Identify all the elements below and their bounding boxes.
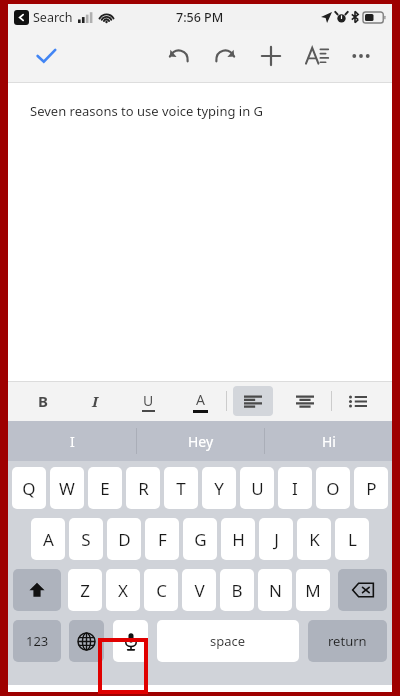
staticText: 7:56 PM	[176, 9, 224, 26]
button[interactable]: Align left	[233, 386, 273, 416]
button[interactable]: S	[69, 518, 103, 560]
button[interactable]: C	[144, 569, 178, 611]
button[interactable]: W	[50, 467, 84, 509]
staticText: V	[194, 579, 205, 602]
button[interactable]: J	[259, 518, 293, 560]
button[interactable]: A	[31, 518, 65, 560]
button[interactable]: U	[240, 467, 274, 509]
button[interactable]: Numbers	[13, 620, 61, 662]
staticText: F	[158, 528, 167, 551]
staticText: Hey	[188, 432, 214, 451]
button[interactable]: Z	[68, 569, 102, 611]
staticText: M	[305, 579, 321, 602]
button[interactable]: B	[220, 569, 254, 611]
button[interactable]: M	[296, 569, 330, 611]
staticText: Z	[80, 579, 90, 602]
button[interactable]: Redo	[206, 37, 244, 75]
staticText: D	[118, 528, 131, 551]
staticText: space	[210, 632, 246, 650]
button[interactable]: I	[8, 421, 136, 461]
staticText: J	[274, 528, 279, 551]
button[interactable]: Bold	[22, 386, 63, 416]
button[interactable]: Voice typing	[113, 620, 148, 662]
staticText: K	[309, 528, 320, 551]
button[interactable]: L	[335, 518, 369, 560]
button[interactable]: E	[88, 467, 122, 509]
staticText: G	[194, 528, 207, 551]
staticText: E	[100, 477, 110, 500]
button[interactable]: Hey	[137, 421, 264, 461]
button[interactable]: Q	[12, 467, 46, 509]
staticText: U	[143, 391, 154, 410]
staticText: Y	[214, 477, 224, 500]
staticText: H	[232, 528, 245, 551]
staticText: C	[156, 579, 167, 602]
button[interactable]: Backspace	[338, 569, 387, 611]
staticText: A	[196, 390, 205, 409]
staticText: X	[118, 579, 128, 602]
staticText: I	[92, 391, 99, 411]
button[interactable]: Format	[298, 37, 336, 75]
button[interactable]: O	[316, 467, 350, 509]
button[interactable]: V	[182, 569, 216, 611]
staticText: O	[326, 477, 340, 500]
staticText: Hi	[322, 432, 336, 451]
button[interactable]: T	[164, 467, 198, 509]
button[interactable]: K	[297, 518, 331, 560]
button[interactable]: Text color	[180, 386, 220, 416]
button[interactable]: N	[258, 569, 292, 611]
button[interactable]: D	[107, 518, 141, 560]
staticText: return	[328, 632, 367, 650]
button[interactable]: Align center	[285, 386, 325, 416]
button[interactable]: Done	[26, 36, 66, 76]
button[interactable]: Bulleted list	[338, 386, 378, 416]
staticText: W	[59, 477, 75, 500]
button[interactable]: Return	[308, 620, 387, 662]
button[interactable]: I	[278, 467, 312, 509]
staticText: Search	[33, 9, 73, 26]
staticText: Seven reasons to use voice typing in G	[30, 102, 264, 120]
button[interactable]: Insert	[252, 37, 290, 75]
staticText: R	[138, 477, 149, 500]
staticText: I	[70, 432, 75, 451]
button[interactable]: Y	[202, 467, 236, 509]
staticText: Q	[22, 477, 36, 500]
button[interactable]: Shift	[13, 569, 61, 611]
button[interactable]: space	[157, 620, 299, 662]
button[interactable]: X	[106, 569, 140, 611]
button[interactable]: G	[183, 518, 217, 560]
staticText: A	[43, 528, 54, 551]
staticText: B	[231, 579, 243, 602]
button[interactable]: P	[354, 467, 388, 509]
button[interactable]: H	[221, 518, 255, 560]
button[interactable]: Switch keyboard	[69, 620, 104, 662]
staticText: N	[269, 579, 282, 602]
staticText: P	[366, 477, 377, 500]
button[interactable]: Underline	[128, 386, 168, 416]
button[interactable]: Undo	[160, 37, 198, 75]
button[interactable]: Italic	[75, 386, 116, 416]
staticText: I	[292, 477, 298, 500]
button[interactable]: Hi	[265, 421, 392, 461]
staticText: T	[176, 477, 186, 500]
staticText: B	[38, 391, 48, 411]
staticText: S	[81, 528, 91, 551]
staticText: L	[348, 528, 357, 551]
button[interactable]: F	[145, 518, 179, 560]
button[interactable]: R	[126, 467, 160, 509]
staticText: U	[251, 477, 264, 500]
staticText: 123	[26, 632, 49, 650]
button[interactable]: More options	[342, 37, 380, 75]
